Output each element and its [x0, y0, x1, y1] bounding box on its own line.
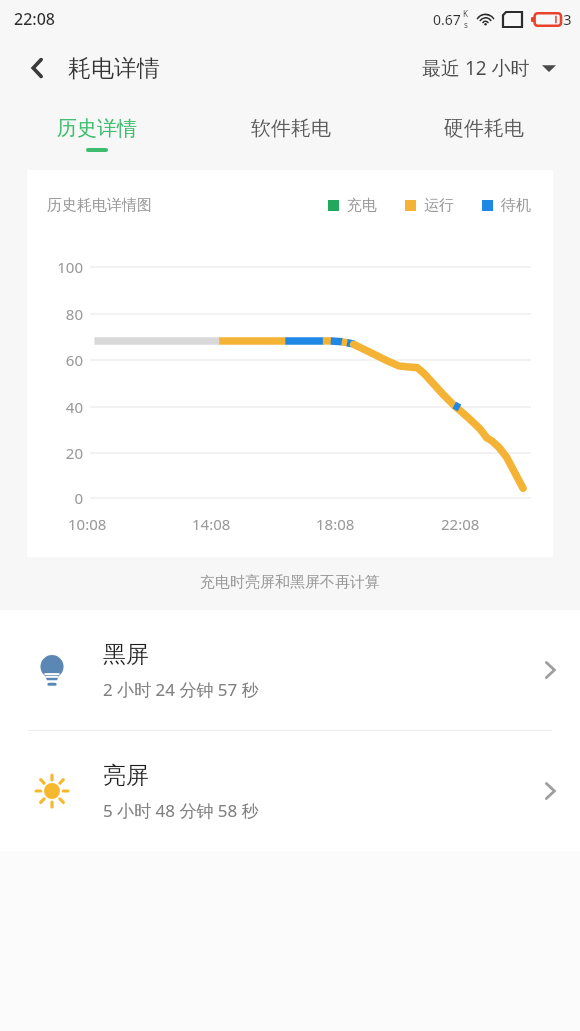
button[interactable]: 最近 12 小时: [422, 55, 556, 81]
staticText: 80: [27, 304, 83, 324]
staticText: 40: [27, 397, 83, 417]
staticText: 0: [27, 488, 83, 508]
staticText: 22:08: [441, 514, 480, 534]
button[interactable]: 硬件耗电: [387, 98, 580, 170]
staticText: 软件耗电: [251, 116, 331, 141]
staticText: 充电: [347, 196, 377, 215]
staticText: 历史详情: [57, 116, 137, 141]
staticText: 3: [563, 9, 572, 29]
button[interactable]: 历史详情: [0, 98, 194, 170]
staticText: 18:08: [316, 514, 355, 534]
staticText: 2 小时 24 分钟 57 秒: [103, 678, 259, 701]
staticText: 100: [27, 257, 83, 277]
staticText: 最近 12 小时: [422, 55, 530, 81]
staticText: 充电时亮屏和黑屏不再计算: [0, 573, 580, 592]
button[interactable]: Back: [18, 48, 58, 88]
staticText: 待机: [501, 196, 531, 215]
staticText: 22:08: [14, 8, 55, 30]
button[interactable]: 软件耗电: [194, 98, 387, 170]
staticText: 60: [27, 350, 83, 370]
staticText: 耗电详情: [68, 54, 160, 83]
staticText: 运行: [424, 196, 454, 215]
staticText: 14:08: [192, 514, 231, 534]
staticText: 历史耗电详情图: [47, 196, 152, 215]
staticText: 20: [27, 443, 83, 463]
staticText: 0.67: [433, 10, 461, 29]
staticText: 亮屏: [103, 761, 149, 790]
staticText: s: [464, 19, 468, 30]
button[interactable]: 黑屏: [0, 610, 580, 730]
staticText: 10:08: [68, 514, 107, 534]
staticText: 黑屏: [103, 640, 149, 669]
staticText: 硬件耗电: [444, 116, 524, 141]
staticText: 5 小时 48 分钟 58 秒: [103, 799, 259, 822]
button[interactable]: 亮屏: [0, 731, 580, 851]
staticText: K: [463, 8, 468, 19]
